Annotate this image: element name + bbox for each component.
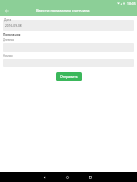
staticText: 18:05: [127, 1, 136, 6]
staticText: Показания: [3, 33, 21, 37]
button[interactable]: Recent apps: [84, 172, 97, 182]
button[interactable]: Back: [38, 172, 51, 182]
staticText: 2016-09-08: [5, 24, 22, 28]
button[interactable]: Home: [61, 172, 74, 182]
button[interactable]: Отправить: [56, 72, 82, 81]
staticText: Ввести показания счетчика: [36, 8, 90, 13]
button[interactable]: Back: [2, 6, 11, 15]
staticText: Ночная: [3, 54, 13, 58]
staticText: Дата: [4, 18, 12, 22]
staticText: Дневная: [3, 38, 14, 42]
staticText: Отправить: [60, 74, 78, 79]
button[interactable]: 2016-09-08: [3, 20, 134, 31]
